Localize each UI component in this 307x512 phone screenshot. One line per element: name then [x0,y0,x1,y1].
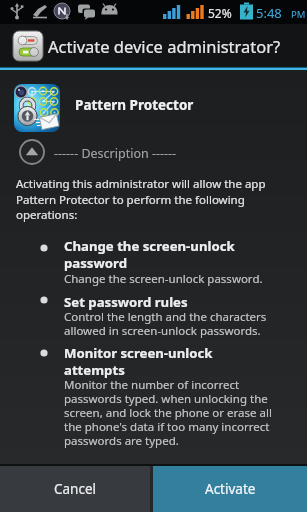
staticText: Change the screen-unlock password [64,237,235,271]
staticText: Activate device administrator? [48,35,281,57]
staticText: Set password rules [64,293,188,311]
button[interactable]: Activate [153,466,307,512]
staticText: Monitor screen-unlock attempts [64,344,213,378]
staticText: Cancel [54,480,97,498]
button[interactable]: Cancel [0,466,150,512]
staticText: ------ Description ------ [54,145,177,162]
staticText: Control the length and the characters al… [64,309,267,338]
staticText: Activating this administrator will allow… [16,176,266,222]
staticText: 52% [208,5,232,21]
staticText: Pattern Protector [75,96,194,114]
staticText: Monitor the number of incorrect password… [64,377,272,448]
staticText: Change the screen-unlock password. [64,271,263,287]
staticText: Activate [205,480,256,498]
staticText: PM [291,8,306,21]
button[interactable] [19,139,45,165]
staticText: 5:48 [256,4,282,22]
